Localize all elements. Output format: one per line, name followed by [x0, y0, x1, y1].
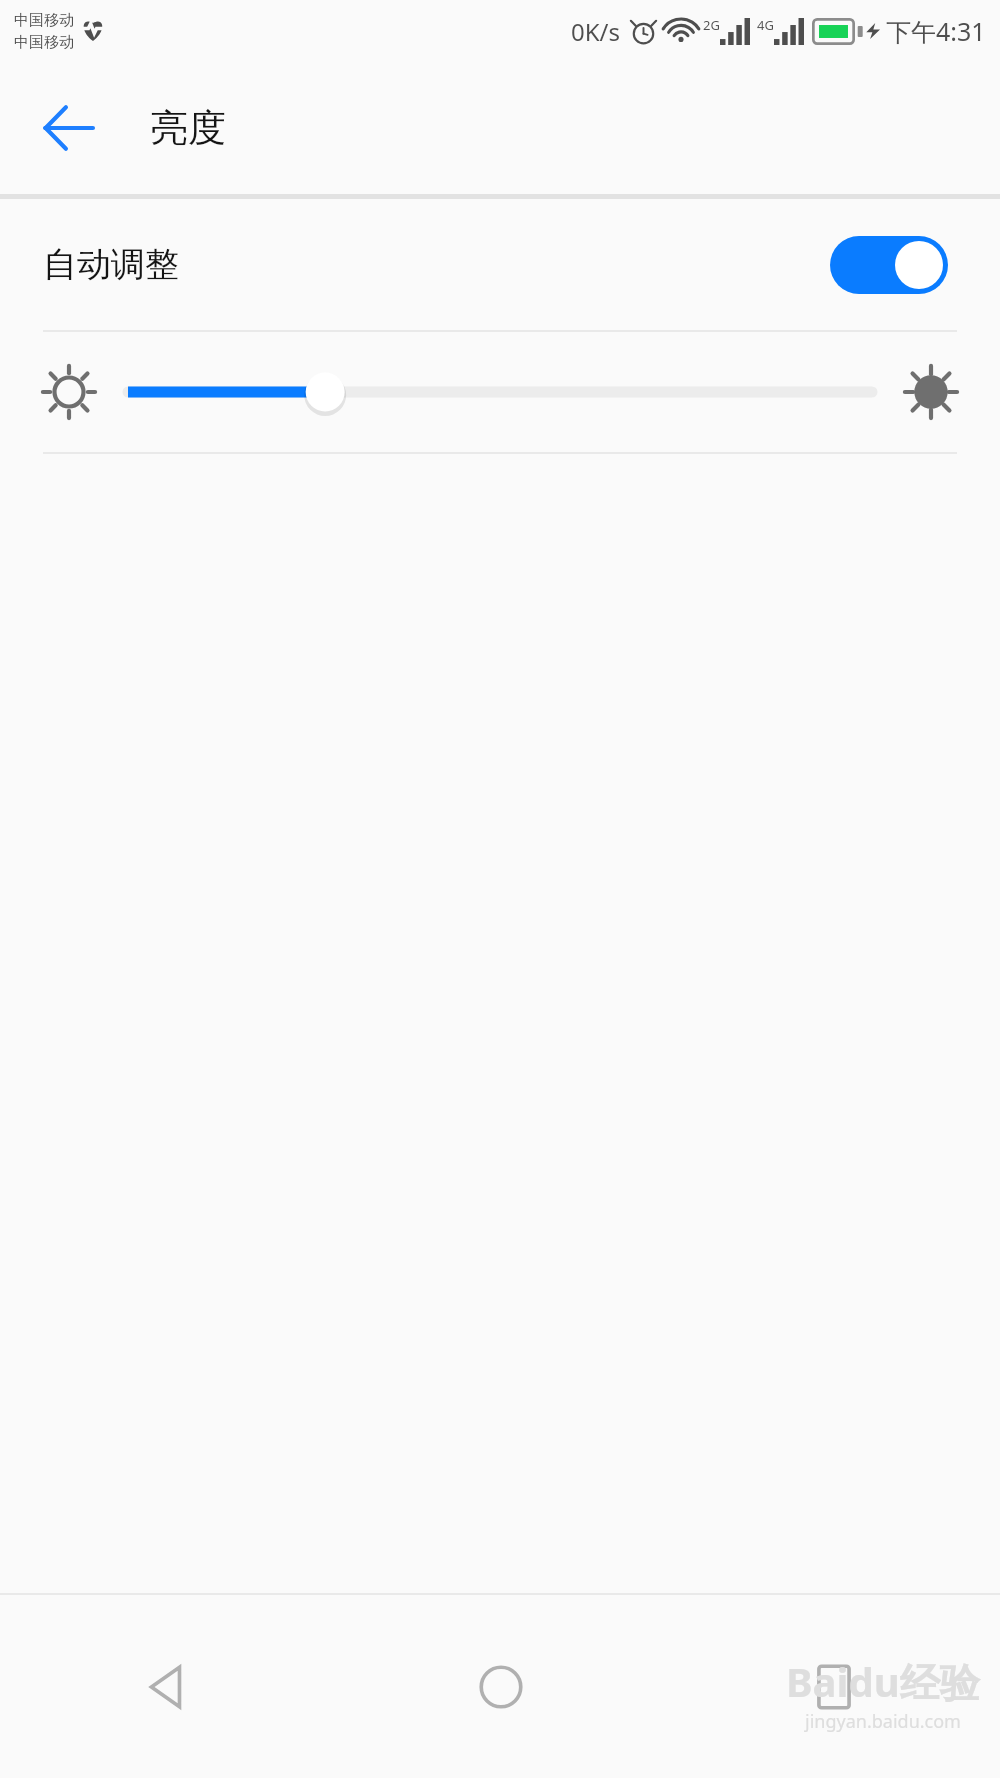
staticText: 自动调整: [43, 243, 179, 286]
button[interactable]: Recents: [667, 1595, 1000, 1778]
button[interactable]: Auto adjust, on: [830, 236, 948, 294]
button[interactable]: Brightness level: [128, 361, 872, 423]
button[interactable]: Home: [334, 1595, 667, 1778]
staticText: 中国移动: [14, 33, 74, 52]
button[interactable]: Back: [0, 1595, 334, 1778]
button[interactable]: Back: [20, 80, 116, 176]
button[interactable]: 自动调整: [0, 199, 1000, 330]
staticText: 下午4:31: [886, 14, 986, 48]
staticText: 亮度: [150, 104, 226, 152]
staticText: jingyan.baidu.com: [805, 1709, 961, 1734]
staticText: 4G: [757, 16, 774, 34]
staticText: 中国移动: [14, 11, 74, 30]
staticText: 0K/s: [571, 15, 621, 48]
staticText: 2G: [703, 16, 720, 34]
staticText: Baidu经验: [786, 1654, 980, 1709]
